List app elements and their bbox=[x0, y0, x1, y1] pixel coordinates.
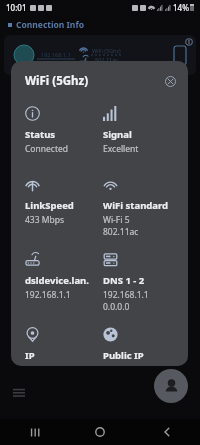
button[interactable]: Devices bbox=[154, 369, 188, 403]
button[interactable]: Signal bbox=[103, 106, 180, 155]
staticText: 433 Mbps bbox=[25, 214, 65, 226]
staticText: 802.11ac bbox=[103, 226, 139, 238]
button[interactable]: LinkSpeed bbox=[25, 177, 99, 226]
button[interactable]: Back bbox=[133, 419, 200, 445]
staticText: 192.168.1.1 bbox=[41, 51, 71, 58]
staticText: WiFi standard bbox=[103, 199, 169, 212]
button[interactable]: Close bbox=[161, 72, 179, 90]
staticText: dsldevice.lan. bbox=[25, 274, 89, 287]
staticText: 0.0.0.0 bbox=[103, 301, 130, 313]
staticText: 10:01 bbox=[6, 2, 27, 13]
staticText: Signal bbox=[103, 128, 132, 141]
staticText: 192.168.1.1 bbox=[103, 289, 149, 301]
staticText: Status bbox=[25, 128, 56, 141]
staticText: Connection Info bbox=[16, 19, 84, 31]
button[interactable]: DNS 1 - 2 bbox=[103, 252, 180, 313]
staticText: LinkSpeed bbox=[25, 199, 74, 212]
staticText: 14% bbox=[173, 2, 189, 13]
button[interactable]: IP bbox=[25, 327, 99, 366]
staticText: WiFi (5Ghz) bbox=[25, 73, 89, 89]
staticText: DNS 1 - 2 bbox=[103, 274, 145, 287]
staticText: Public IP bbox=[103, 349, 144, 362]
button[interactable]: dsldevice.lan. bbox=[25, 252, 99, 301]
staticText: WiFi (5Ghz) bbox=[92, 47, 121, 54]
button[interactable]: WiFi standard bbox=[103, 177, 180, 238]
button[interactable]: Info bbox=[183, 36, 195, 48]
button[interactable]: Status bbox=[25, 106, 99, 155]
button[interactable]: Home bbox=[66, 419, 133, 445]
staticText: IP bbox=[25, 349, 35, 362]
staticText: 192.168.1.1 bbox=[25, 289, 71, 301]
staticText: 802.11ac bbox=[95, 56, 118, 63]
button[interactable]: Menu bbox=[6, 379, 32, 405]
staticText: Connected bbox=[25, 143, 68, 155]
staticText: Excellent bbox=[103, 143, 139, 155]
button[interactable]: Recents bbox=[0, 419, 66, 445]
button[interactable]: Public IP bbox=[103, 327, 180, 366]
staticText: Wi-Fi 5 bbox=[103, 214, 130, 226]
